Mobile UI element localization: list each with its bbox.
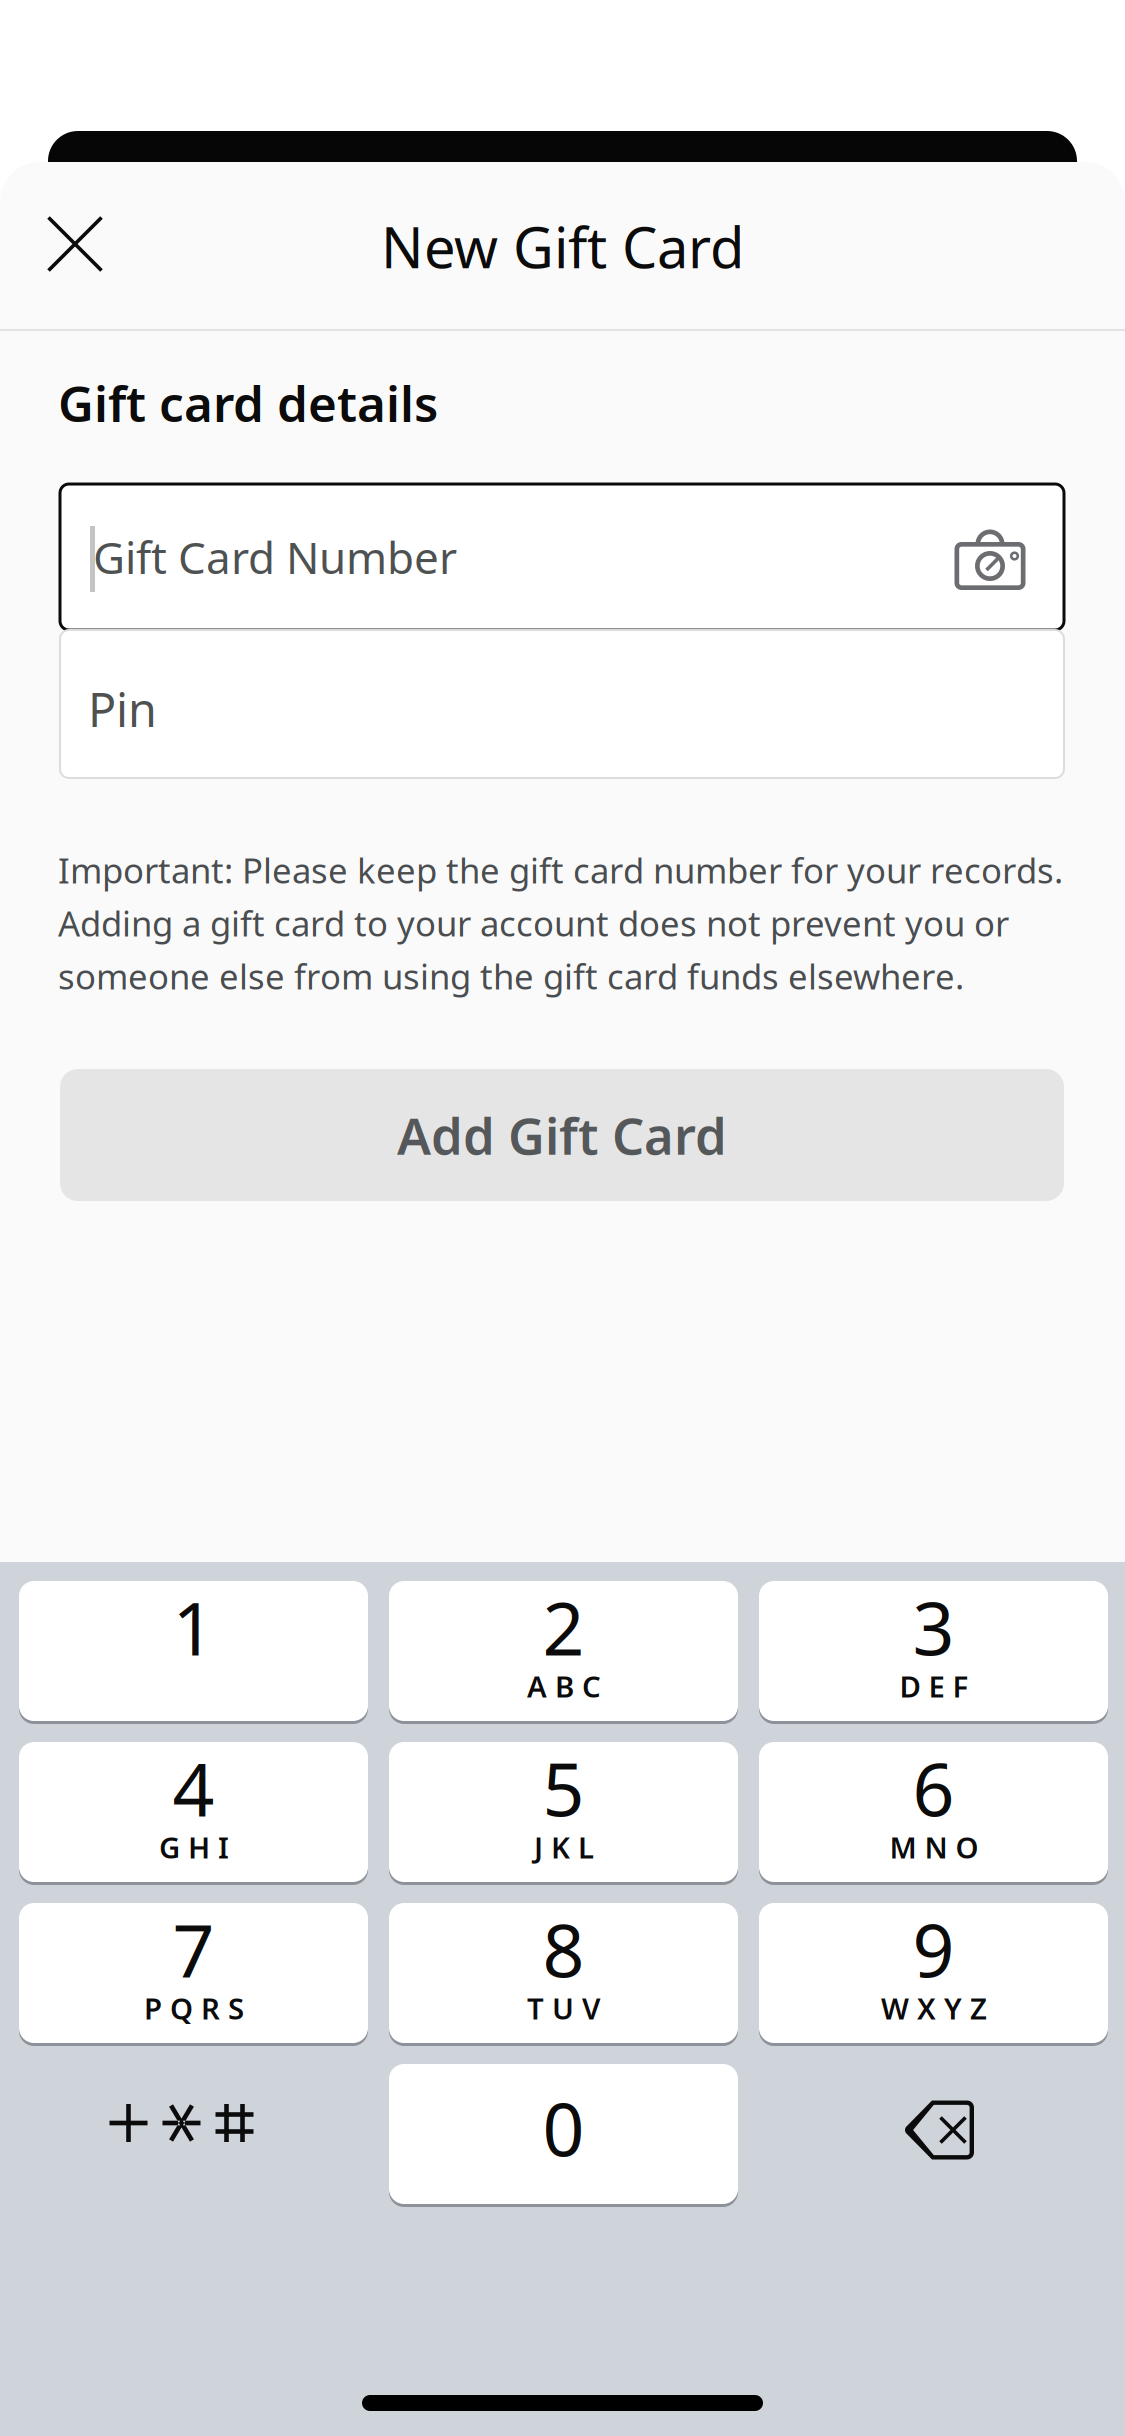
button[interactable]: 9	[759, 1903, 1108, 2043]
staticText: 2	[542, 1578, 584, 1676]
staticText: Pin	[88, 678, 157, 740]
staticText: 7	[172, 1900, 214, 1998]
staticText: 8	[542, 1900, 584, 1998]
button[interactable]: 7	[19, 1903, 368, 2043]
staticText: GHI	[159, 1827, 229, 1866]
staticText: ABC	[527, 1666, 601, 1705]
button[interactable]: 4	[19, 1742, 368, 1882]
button[interactable]: 0	[389, 2064, 738, 2204]
staticText: MNO	[889, 1827, 978, 1866]
button[interactable]: 6	[759, 1742, 1108, 1882]
staticText: JKL	[534, 1827, 594, 1866]
button[interactable]: Symbols	[19, 2064, 368, 2204]
staticText: 0	[542, 2079, 584, 2177]
staticText: Important: Please keep the gift card num…	[58, 847, 1063, 999]
staticText: Gift card details	[58, 370, 438, 435]
staticText: 3	[912, 1578, 954, 1676]
staticText: New Gift Card	[381, 209, 744, 284]
button[interactable]: 1	[19, 1581, 368, 1721]
staticText: DEF	[899, 1666, 968, 1705]
button[interactable]: 5	[389, 1742, 738, 1882]
staticText: 9	[912, 1900, 954, 1998]
staticText: WXYZ	[881, 1988, 987, 2027]
staticText: 6	[912, 1739, 954, 1837]
button[interactable]: 8	[389, 1903, 738, 2043]
button[interactable]: Scan card	[944, 507, 1044, 607]
staticText: 1	[172, 1578, 214, 1676]
staticText: 5	[542, 1739, 584, 1837]
button[interactable]: Add Gift Card	[60, 1069, 1064, 1201]
staticText: Gift Card Number	[93, 528, 457, 586]
staticText: 4	[172, 1739, 214, 1837]
staticText: TUV	[527, 1988, 601, 2027]
button[interactable]: 3	[759, 1581, 1108, 1721]
button[interactable]: Close	[20, 189, 130, 299]
button[interactable]: 2	[389, 1581, 738, 1721]
button[interactable]: Delete	[759, 2064, 1108, 2204]
staticText: Add Gift Card	[397, 1101, 727, 1169]
staticText: PQRS	[144, 1988, 244, 2027]
